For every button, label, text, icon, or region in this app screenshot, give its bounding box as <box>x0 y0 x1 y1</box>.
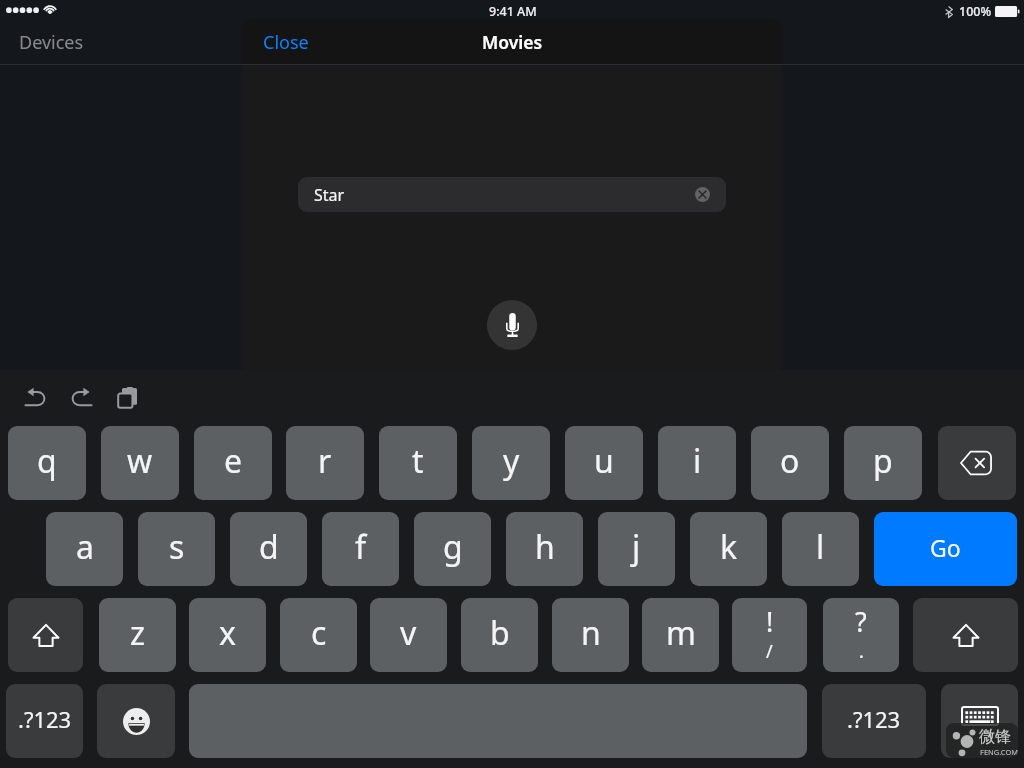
button[interactable]: f <box>322 512 399 586</box>
staticText: d <box>259 525 279 569</box>
staticText: k <box>720 525 738 569</box>
staticText: . <box>859 639 864 664</box>
button[interactable]: Exclamation mark <box>732 598 807 672</box>
staticText: q <box>37 439 57 483</box>
staticText: s <box>169 525 185 569</box>
button[interactable]: Shift <box>913 598 1018 672</box>
button[interactable]: t <box>379 426 457 500</box>
staticText: n <box>581 611 601 655</box>
staticText: b <box>490 611 510 655</box>
staticText: Go <box>930 532 961 563</box>
button[interactable]: l <box>782 512 859 586</box>
button[interactable]: z <box>99 598 176 672</box>
staticText: Close <box>263 30 309 55</box>
staticText: 9:41 AM <box>489 3 537 20</box>
button[interactable]: Star <box>298 177 726 212</box>
button[interactable]: Close <box>263 30 309 55</box>
staticText: g <box>443 525 463 569</box>
button[interactable]: w <box>101 426 179 500</box>
staticText: e <box>224 439 243 483</box>
button[interactable]: .?123 <box>822 684 926 758</box>
button[interactable]: Emoji keyboard <box>97 684 175 758</box>
button[interactable]: Backspace <box>938 426 1016 500</box>
staticText: u <box>594 439 614 483</box>
staticText: c <box>311 611 327 655</box>
button[interactable]: Voice search <box>487 300 537 350</box>
button[interactable]: d <box>230 512 307 586</box>
staticText: v <box>400 611 417 655</box>
button[interactable]: Hide keyboard <box>941 684 1018 758</box>
button[interactable]: Clear text <box>695 187 710 202</box>
button[interactable]: Shift <box>8 598 83 672</box>
staticText: j <box>632 525 641 569</box>
button[interactable]: n <box>552 598 629 672</box>
button[interactable]: u <box>565 426 643 500</box>
staticText: m <box>666 611 696 655</box>
staticText: ? <box>855 603 867 640</box>
button[interactable]: v <box>370 598 447 672</box>
staticText: a <box>76 525 94 569</box>
button[interactable]: Paste <box>118 387 137 408</box>
staticText: FENG.COM <box>980 747 1018 757</box>
button[interactable]: Question mark <box>823 598 899 672</box>
staticText: Movies <box>242 30 782 54</box>
button[interactable]: c <box>280 598 357 672</box>
button[interactable]: Go <box>874 512 1017 586</box>
button[interactable]: e <box>194 426 272 500</box>
staticText: i <box>693 439 702 483</box>
button[interactable]: r <box>286 426 364 500</box>
staticText: f <box>355 525 367 569</box>
staticText: .?123 <box>18 704 72 734</box>
staticText: / <box>766 639 773 664</box>
button[interactable]: h <box>506 512 583 586</box>
staticText: 100% <box>959 3 992 20</box>
staticText: .?123 <box>847 704 901 734</box>
button[interactable]: q <box>8 426 86 500</box>
staticText: z <box>130 611 146 655</box>
button[interactable]: .?123 <box>6 684 83 758</box>
button[interactable]: j <box>598 512 675 586</box>
button[interactable]: p <box>844 426 922 500</box>
button[interactable]: s <box>138 512 215 586</box>
staticText: h <box>535 525 555 569</box>
button[interactable]: m <box>642 598 719 672</box>
staticText: w <box>127 439 153 483</box>
staticText: o <box>780 439 800 483</box>
button[interactable]: a <box>46 512 123 586</box>
staticText: Devices <box>19 30 84 55</box>
staticText: r <box>318 439 332 483</box>
staticText: y <box>503 439 520 483</box>
staticText: x <box>219 611 236 655</box>
button[interactable]: y <box>472 426 550 500</box>
button[interactable]: x <box>189 598 266 672</box>
button[interactable]: o <box>751 426 829 500</box>
staticText: 微锋 <box>979 727 1011 747</box>
staticText: t <box>412 439 424 483</box>
staticText: p <box>873 439 893 483</box>
button[interactable]: i <box>658 426 736 500</box>
staticText: l <box>816 525 825 569</box>
button[interactable]: Redo <box>69 386 93 410</box>
staticText: ! <box>766 603 774 640</box>
button[interactable]: b <box>461 598 538 672</box>
button[interactable]: Undo <box>24 386 48 410</box>
staticText: Star <box>314 184 345 206</box>
button[interactable]: g <box>414 512 491 586</box>
button[interactable]: k <box>690 512 767 586</box>
